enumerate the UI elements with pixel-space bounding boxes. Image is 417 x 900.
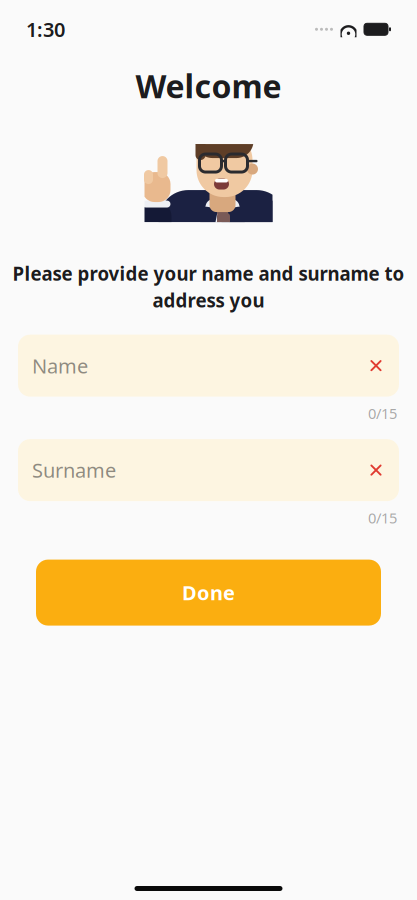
button[interactable]: Name xyxy=(18,335,399,397)
staticText: Done xyxy=(182,579,235,606)
staticText: 0/15 xyxy=(368,404,397,423)
button[interactable]: Surname xyxy=(18,439,399,501)
button[interactable]: Done xyxy=(36,560,381,626)
staticText: 0/15 xyxy=(368,508,397,528)
staticText: Welcome xyxy=(135,65,281,107)
staticText: 1:30 xyxy=(26,16,65,43)
staticText: Name xyxy=(32,352,88,379)
staticText: Please provide your name and surname to xyxy=(12,261,404,286)
staticText: Surname xyxy=(32,457,116,483)
staticText: address you xyxy=(152,288,264,313)
